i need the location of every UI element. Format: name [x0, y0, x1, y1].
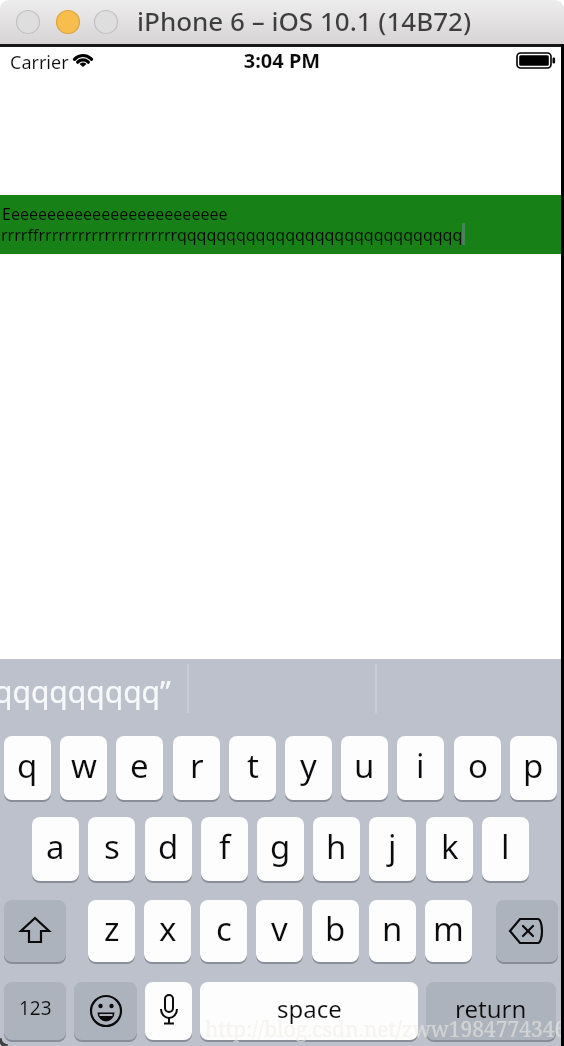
staticText: a [46, 824, 65, 869]
button[interactable] [496, 900, 558, 962]
button[interactable]: x [144, 900, 191, 962]
staticText: z [104, 906, 120, 951]
staticText: h [326, 824, 347, 869]
staticText: space [277, 992, 342, 1025]
staticText: return [455, 992, 527, 1025]
button[interactable]: d [145, 817, 192, 881]
staticText: p [523, 743, 544, 788]
staticText: 3:04 PM [0, 47, 564, 74]
staticText: f [219, 824, 231, 869]
button[interactable] [145, 982, 192, 1040]
button[interactable]: w [60, 736, 107, 800]
staticText: g [270, 824, 291, 869]
button[interactable]: k [426, 817, 473, 881]
button[interactable]: r [173, 736, 220, 800]
button[interactable]: m [425, 900, 472, 962]
staticText: http://blog.csdn.net/zww1984774346 [205, 1015, 564, 1044]
staticText: m [433, 906, 464, 951]
button[interactable]: q [4, 736, 51, 800]
staticText: s [104, 824, 120, 869]
staticText: 123 [19, 995, 52, 1021]
staticText: d [158, 824, 179, 869]
staticText: k [441, 824, 459, 869]
button[interactable]: a [32, 817, 79, 881]
staticText: rrrrffrrrrrrrrrrrrrrrrrrrrrqqqqqqqqqqqqq… [1, 224, 463, 246]
staticText: b [325, 906, 346, 951]
button[interactable]: z [88, 900, 135, 962]
staticText: y [300, 743, 317, 788]
button[interactable] [4, 900, 66, 962]
button[interactable]: v [256, 900, 303, 962]
button[interactable]: j [369, 817, 416, 881]
button[interactable]: o [454, 736, 501, 800]
button[interactable]: qqqqqqqqq” [0, 671, 171, 712]
button[interactable]: s [88, 817, 135, 881]
staticText: r [190, 743, 204, 788]
button[interactable]: n [369, 900, 416, 962]
staticText: q [17, 743, 38, 788]
button[interactable]: t [229, 736, 276, 800]
staticText: x [159, 906, 177, 951]
button[interactable]: l [482, 817, 529, 881]
staticText: c [216, 906, 232, 951]
staticText: o [468, 743, 488, 788]
staticText: n [382, 906, 403, 951]
button[interactable]: p [510, 736, 557, 800]
button[interactable]: return [426, 982, 556, 1040]
staticText: Carrier [10, 50, 69, 75]
button[interactable]: e [116, 736, 163, 800]
staticText: v [271, 906, 288, 951]
staticText: Eeeeeeeeeeeeeeeeeeeeeeeee [2, 203, 228, 225]
staticText: w [71, 743, 97, 788]
staticText: u [354, 743, 375, 788]
button[interactable]: space [200, 982, 418, 1040]
button[interactable]: g [257, 817, 304, 881]
staticText: j [388, 824, 397, 869]
button[interactable]: f [201, 817, 248, 881]
button[interactable]: 123 [4, 982, 66, 1040]
staticText: e [130, 743, 149, 788]
button[interactable] [74, 982, 137, 1040]
button[interactable]: b [312, 900, 359, 962]
staticText: i [416, 743, 425, 788]
button[interactable] [0, 195, 561, 254]
button[interactable]: c [200, 900, 247, 962]
staticText: l [501, 824, 510, 869]
button[interactable]: u [341, 736, 388, 800]
button[interactable]: y [285, 736, 332, 800]
button[interactable]: h [313, 817, 360, 881]
staticText: iPhone 6 – iOS 10.1 (14B72) [137, 3, 472, 38]
button[interactable]: i [397, 736, 444, 800]
staticText: t [247, 743, 259, 788]
